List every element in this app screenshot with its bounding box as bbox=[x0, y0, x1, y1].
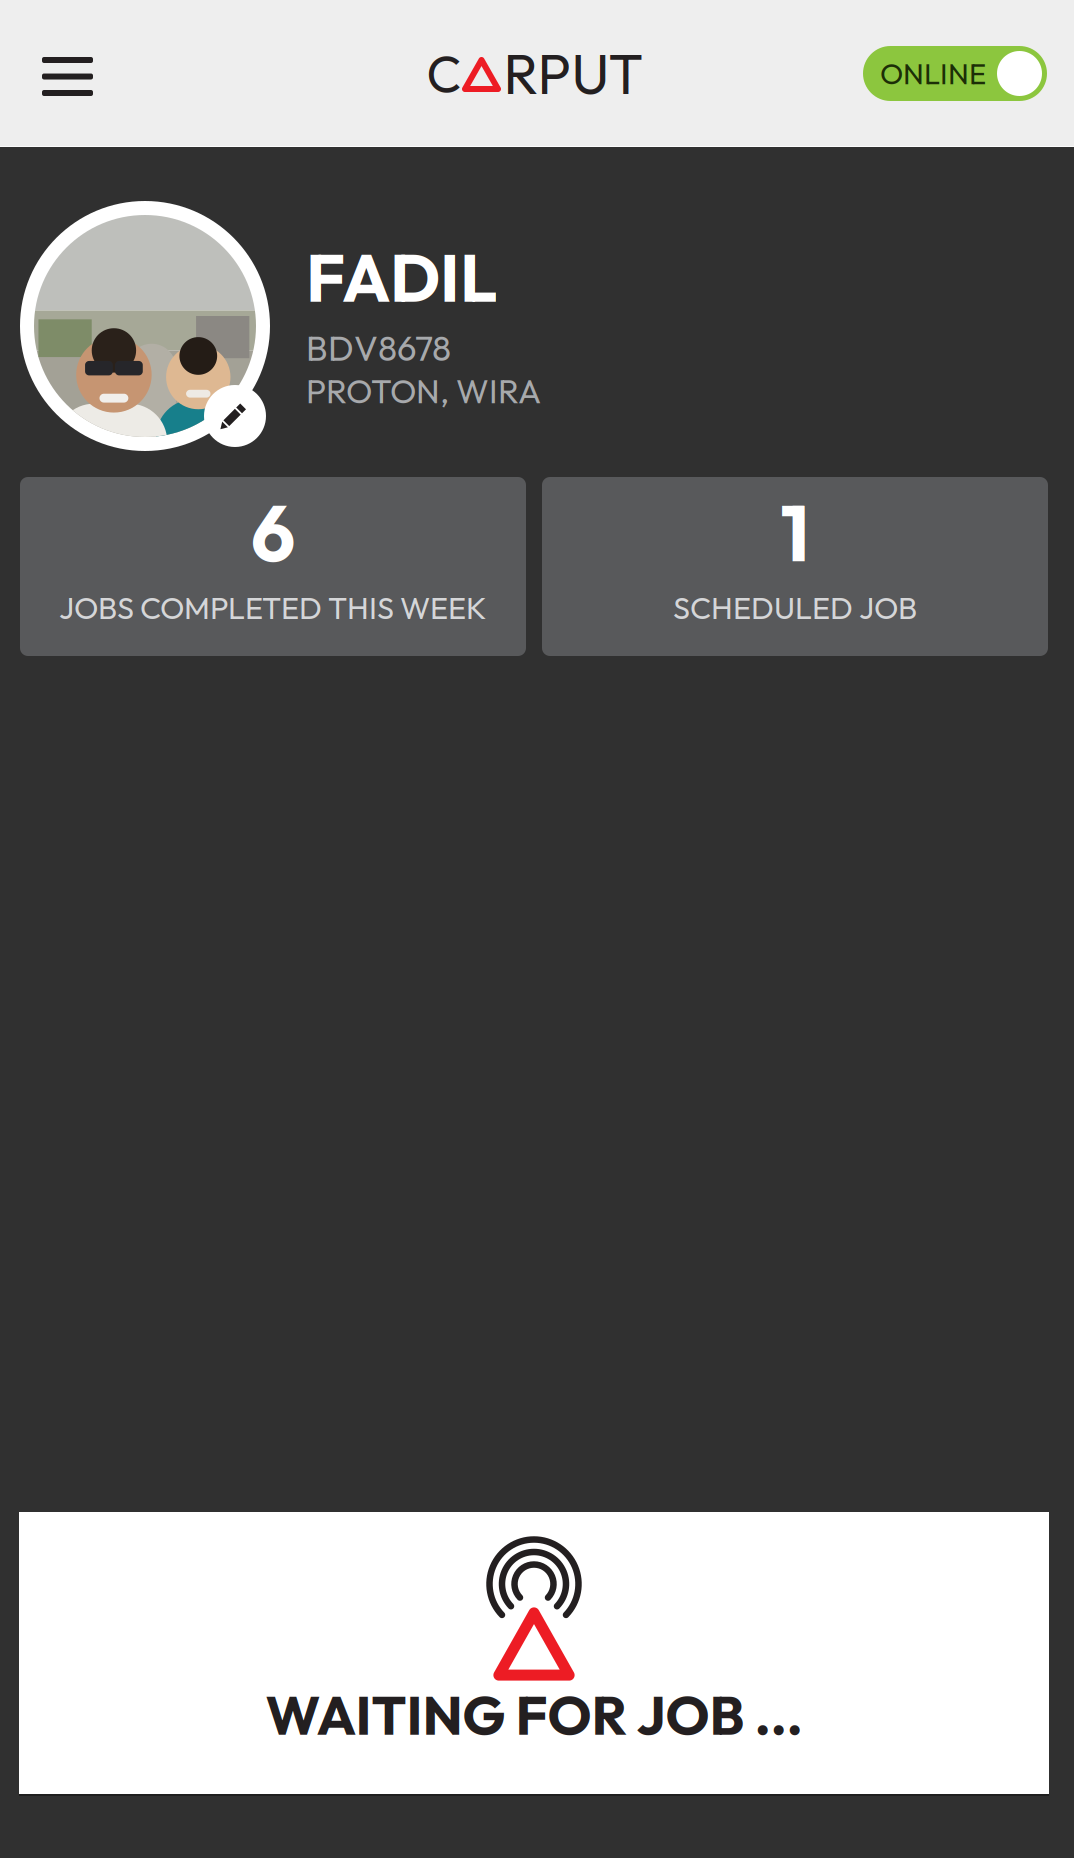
staticText: PROTON, WIRA bbox=[306, 370, 541, 412]
staticText: 6 bbox=[251, 484, 295, 581]
staticText: FADIL bbox=[306, 235, 497, 319]
staticText: SCHEDULED JOB bbox=[673, 588, 917, 627]
button[interactable]: 6 bbox=[20, 477, 526, 656]
button[interactable]: FADIL bbox=[306, 235, 541, 412]
staticText: BDV8678 bbox=[306, 326, 451, 370]
staticText: JOBS COMPLETED THIS WEEK bbox=[59, 588, 487, 627]
staticText: 1 bbox=[780, 484, 809, 581]
staticText: RPUT bbox=[503, 39, 643, 108]
staticText: WAITING FOR JOB ... bbox=[265, 1680, 802, 1749]
staticText: ONLINE bbox=[880, 55, 986, 92]
staticText: C bbox=[426, 42, 461, 105]
button[interactable]: Edit profile photo bbox=[204, 385, 266, 447]
button[interactable]: ONLINE bbox=[863, 46, 1047, 101]
button[interactable]: 1 bbox=[542, 477, 1048, 656]
button[interactable]: Menu bbox=[0, 0, 117, 147]
